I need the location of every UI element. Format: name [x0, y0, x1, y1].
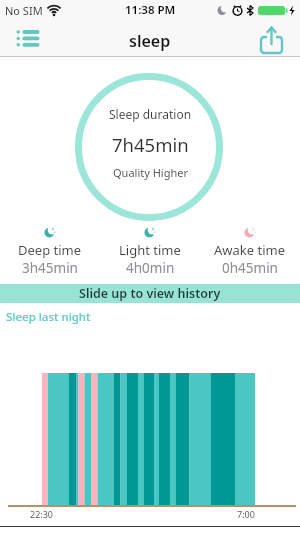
button[interactable]: Light time: [100, 226, 200, 277]
staticText: No SIM: [5, 3, 43, 18]
button[interactable]: [256, 24, 288, 54]
staticText: sleep: [129, 30, 171, 52]
staticText: 3h45min: [22, 259, 78, 277]
staticText: 7h45min: [112, 132, 189, 157]
staticText: Awake time: [214, 241, 286, 259]
staticText: Sleep last night: [6, 309, 91, 325]
staticText: Deep time: [18, 241, 82, 259]
button[interactable]: Deep time: [0, 226, 100, 277]
staticText: 7:00: [237, 508, 255, 520]
staticText: 22:30: [30, 508, 54, 520]
button[interactable]: Awake time: [200, 226, 300, 277]
staticText: 11:38 PM: [125, 2, 176, 18]
staticText: Light time: [119, 241, 181, 259]
staticText: Slide up to view history: [79, 285, 221, 302]
button[interactable]: Slide up to view history: [0, 284, 300, 303]
staticText: 4h0min: [126, 259, 175, 277]
button[interactable]: [14, 27, 44, 51]
staticText: 0h45min: [222, 259, 278, 277]
staticText: Sleep duration: [109, 106, 192, 122]
staticText: Quality Higher: [113, 165, 188, 180]
